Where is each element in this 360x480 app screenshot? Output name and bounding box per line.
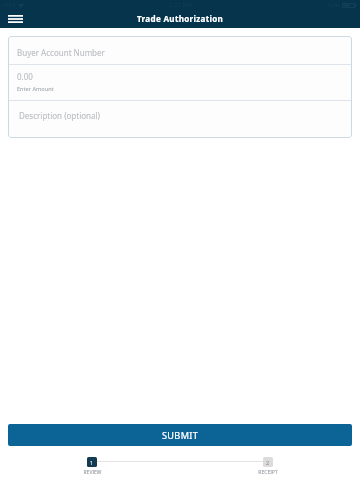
staticText: 1 [90, 459, 94, 466]
staticText: RECEIPT [258, 469, 278, 475]
button[interactable]: SUBMIT [8, 424, 352, 446]
staticText: Buyer Account Number [17, 47, 105, 58]
button[interactable]: 1 [76, 457, 108, 475]
button[interactable]: 2 [252, 457, 284, 475]
staticText: Enter Amount [17, 85, 54, 93]
staticText: SUBMIT [162, 429, 199, 442]
staticText: 2 [266, 459, 270, 466]
staticText: Trade Authorization [137, 13, 224, 24]
staticText: 0.00 [17, 71, 33, 82]
button[interactable]: Menu [2, 9, 28, 28]
staticText: Description (optional) [19, 110, 100, 121]
button[interactable]: Description (optional) [8, 101, 352, 138]
button[interactable]: 0.00 [8, 65, 352, 100]
button[interactable]: Buyer Account Number [8, 36, 352, 64]
staticText: REVIEW [83, 469, 102, 475]
